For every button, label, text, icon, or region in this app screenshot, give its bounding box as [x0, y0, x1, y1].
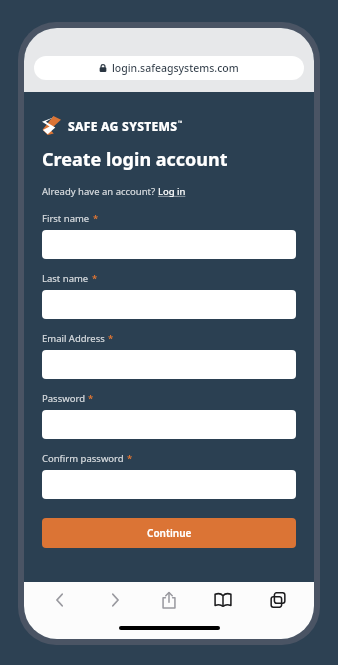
staticText: First name: [42, 212, 90, 225]
button[interactable]: [42, 410, 296, 439]
button[interactable]: Share: [151, 582, 187, 618]
button[interactable]: Forward: [97, 582, 133, 618]
staticText: ™: [178, 119, 183, 127]
button[interactable]: [42, 350, 296, 379]
button[interactable]: Back: [42, 582, 78, 618]
staticText: *: [93, 212, 99, 225]
staticText: Already have an account?: [42, 185, 158, 198]
button[interactable]: Tabs: [260, 582, 296, 618]
staticText: Create login account: [42, 147, 228, 172]
staticText: Password: [42, 392, 85, 405]
button[interactable]: Bookmarks: [205, 582, 241, 618]
staticText: *: [108, 332, 114, 345]
button[interactable]: login.safeagsystems.com: [34, 56, 304, 80]
button[interactable]: [42, 290, 296, 319]
staticText: Continue: [147, 526, 192, 540]
button[interactable]: [42, 230, 296, 259]
button[interactable]: Continue: [42, 518, 296, 548]
staticText: *: [127, 452, 133, 465]
staticText: Log in: [158, 185, 186, 198]
button[interactable]: Log in: [158, 185, 186, 198]
staticText: Confirm password: [42, 452, 124, 465]
staticText: *: [88, 392, 94, 405]
staticText: Last name: [42, 272, 89, 285]
staticText: Email Address: [42, 332, 105, 345]
staticText: login.safeagsystems.com: [112, 61, 239, 75]
button[interactable]: [42, 470, 296, 499]
staticText: SAFE AG SYSTEMS: [68, 118, 178, 134]
staticText: *: [92, 272, 98, 285]
